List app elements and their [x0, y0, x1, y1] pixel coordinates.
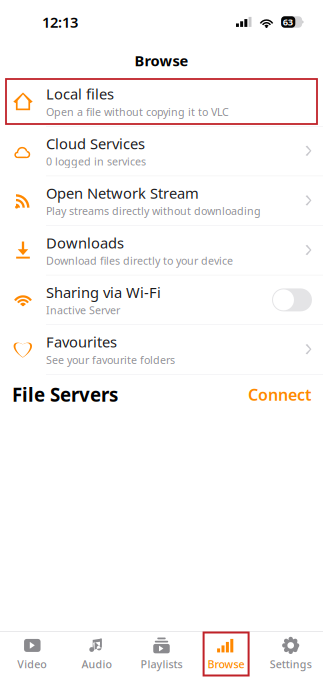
staticText: File Servers: [12, 382, 118, 407]
staticText: Play streams directly without downloadin…: [46, 204, 261, 218]
button[interactable]: Browse: [194, 633, 258, 675]
staticText: Audio: [81, 657, 112, 671]
button[interactable]: Local files: [0, 77, 323, 126]
staticText: Inactive Server: [46, 303, 120, 317]
staticText: See your favourite folders: [46, 353, 175, 367]
staticText: Open Network Stream: [46, 183, 199, 203]
button[interactable]: Video: [0, 633, 65, 675]
button[interactable]: Audio: [65, 633, 129, 675]
staticText: Video: [17, 657, 47, 671]
staticText: Open a file without copying it to VLC: [46, 105, 229, 119]
button[interactable]: Favourites: [0, 325, 323, 374]
staticText: Downloads: [46, 233, 124, 252]
staticText: 0 logged in services: [46, 154, 146, 168]
staticText: 63: [283, 16, 293, 28]
button[interactable]: Connect: [248, 384, 311, 405]
staticText: Settings: [270, 657, 312, 671]
button[interactable]: Settings: [258, 633, 323, 675]
staticText: 12:13: [42, 12, 78, 32]
staticText: Download files directly to your device: [46, 253, 233, 268]
staticText: Local files: [46, 84, 114, 104]
button[interactable]: Cloud Services: [0, 127, 323, 176]
button[interactable]: Playlists: [129, 633, 194, 675]
staticText: Playlists: [140, 657, 182, 671]
button[interactable]: Open Network Stream: [0, 176, 323, 225]
staticText: Favourites: [46, 332, 117, 352]
button[interactable]: Downloads: [0, 226, 323, 275]
staticText: Browse: [134, 51, 188, 70]
staticText: Cloud Services: [46, 134, 145, 153]
staticText: Browse: [208, 657, 245, 671]
staticText: Sharing via Wi-Fi: [46, 283, 161, 302]
button[interactable]: Sharing via Wi-Fi: [0, 275, 323, 324]
staticText: Connect: [248, 384, 311, 405]
